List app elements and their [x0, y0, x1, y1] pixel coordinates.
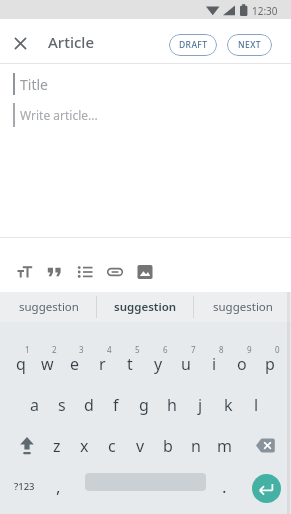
staticText: n: [191, 435, 201, 457]
button[interactable]: x: [70, 425, 98, 466]
button[interactable]: DRAFT: [169, 34, 217, 56]
button[interactable]: n: [182, 425, 210, 466]
staticText: ?123: [14, 480, 35, 493]
button[interactable]: [137, 264, 153, 280]
button[interactable]: [77, 264, 93, 280]
button[interactable]: [7, 425, 43, 466]
staticText: 4: [107, 344, 112, 355]
staticText: e: [70, 353, 80, 375]
button[interactable]: [47, 264, 63, 280]
staticText: w: [41, 353, 54, 375]
staticText: a: [30, 394, 39, 416]
staticText: 3: [79, 344, 84, 355]
staticText: 2: [52, 344, 57, 355]
staticText: v: [136, 435, 145, 457]
staticText: 9: [247, 344, 252, 355]
staticText: 0: [275, 344, 280, 355]
button[interactable]: Write article...: [13, 103, 291, 127]
button[interactable]: [107, 264, 123, 280]
staticText: k: [224, 394, 233, 416]
staticText: d: [84, 394, 94, 416]
button[interactable]: suggestion: [0, 292, 97, 322]
staticText: 5: [135, 344, 140, 355]
button[interactable]: Title: [13, 73, 291, 95]
staticText: Article: [48, 32, 94, 52]
button[interactable]: j: [186, 384, 214, 425]
staticText: 8: [219, 344, 224, 355]
button[interactable]: v: [126, 425, 154, 466]
staticText: g: [139, 394, 149, 416]
button[interactable]: p: [256, 343, 284, 384]
staticText: t: [127, 353, 133, 375]
staticText: u: [181, 353, 191, 375]
staticText: i: [212, 353, 217, 375]
button[interactable]: b: [154, 425, 182, 466]
button[interactable]: suggestion: [194, 292, 291, 322]
staticText: f: [113, 394, 119, 416]
staticText: y: [154, 353, 163, 375]
button[interactable]: [8, 31, 32, 55]
staticText: .: [222, 475, 227, 498]
button[interactable]: w: [34, 343, 61, 384]
staticText: 1: [25, 344, 30, 355]
staticText: c: [108, 435, 116, 457]
staticText: z: [53, 435, 61, 457]
staticText: Write article...: [20, 107, 98, 123]
button[interactable]: d: [75, 384, 102, 425]
button[interactable]: k: [214, 384, 242, 425]
staticText: x: [80, 435, 89, 457]
button[interactable]: s: [48, 384, 75, 425]
button[interactable]: e: [61, 343, 88, 384]
button[interactable]: suggestion: [97, 292, 194, 322]
staticText: DRAFT: [179, 39, 208, 51]
button[interactable]: g: [130, 384, 158, 425]
button[interactable]: r: [88, 343, 116, 384]
staticText: suggestion: [19, 299, 79, 315]
button[interactable]: y: [144, 343, 172, 384]
staticText: l: [254, 394, 259, 416]
staticText: p: [265, 353, 275, 375]
staticText: NEXT: [238, 39, 261, 51]
button[interactable]: .: [210, 466, 238, 507]
staticText: 6: [163, 344, 168, 355]
staticText: ,: [56, 475, 61, 498]
button[interactable]: q: [7, 343, 34, 384]
staticText: h: [167, 394, 177, 416]
button[interactable]: ?123: [7, 466, 41, 507]
staticText: b: [163, 435, 173, 457]
staticText: r: [99, 353, 106, 375]
button[interactable]: h: [158, 384, 186, 425]
staticText: o: [237, 353, 247, 375]
staticText: q: [16, 353, 26, 375]
button[interactable]: [238, 425, 284, 466]
staticText: suggestion: [114, 299, 177, 315]
staticText: 12:30: [252, 4, 278, 18]
staticText: s: [58, 394, 66, 416]
button[interactable]: [17, 264, 33, 280]
staticText: 7: [191, 344, 196, 355]
button[interactable]: f: [102, 384, 130, 425]
staticText: Title: [20, 75, 48, 94]
staticText: suggestion: [213, 299, 273, 315]
staticText: m: [217, 435, 232, 457]
button[interactable]: [252, 474, 281, 503]
button[interactable]: a: [21, 384, 48, 425]
button[interactable]: u: [172, 343, 200, 384]
button[interactable]: l: [242, 384, 270, 425]
button[interactable]: ,: [44, 466, 72, 507]
button[interactable]: t: [116, 343, 144, 384]
button[interactable]: NEXT: [227, 34, 272, 56]
button[interactable]: o: [228, 343, 256, 384]
button[interactable]: m: [210, 425, 238, 466]
button[interactable]: z: [43, 425, 70, 466]
button[interactable]: i: [200, 343, 228, 384]
staticText: j: [198, 394, 203, 416]
button[interactable]: c: [98, 425, 126, 466]
